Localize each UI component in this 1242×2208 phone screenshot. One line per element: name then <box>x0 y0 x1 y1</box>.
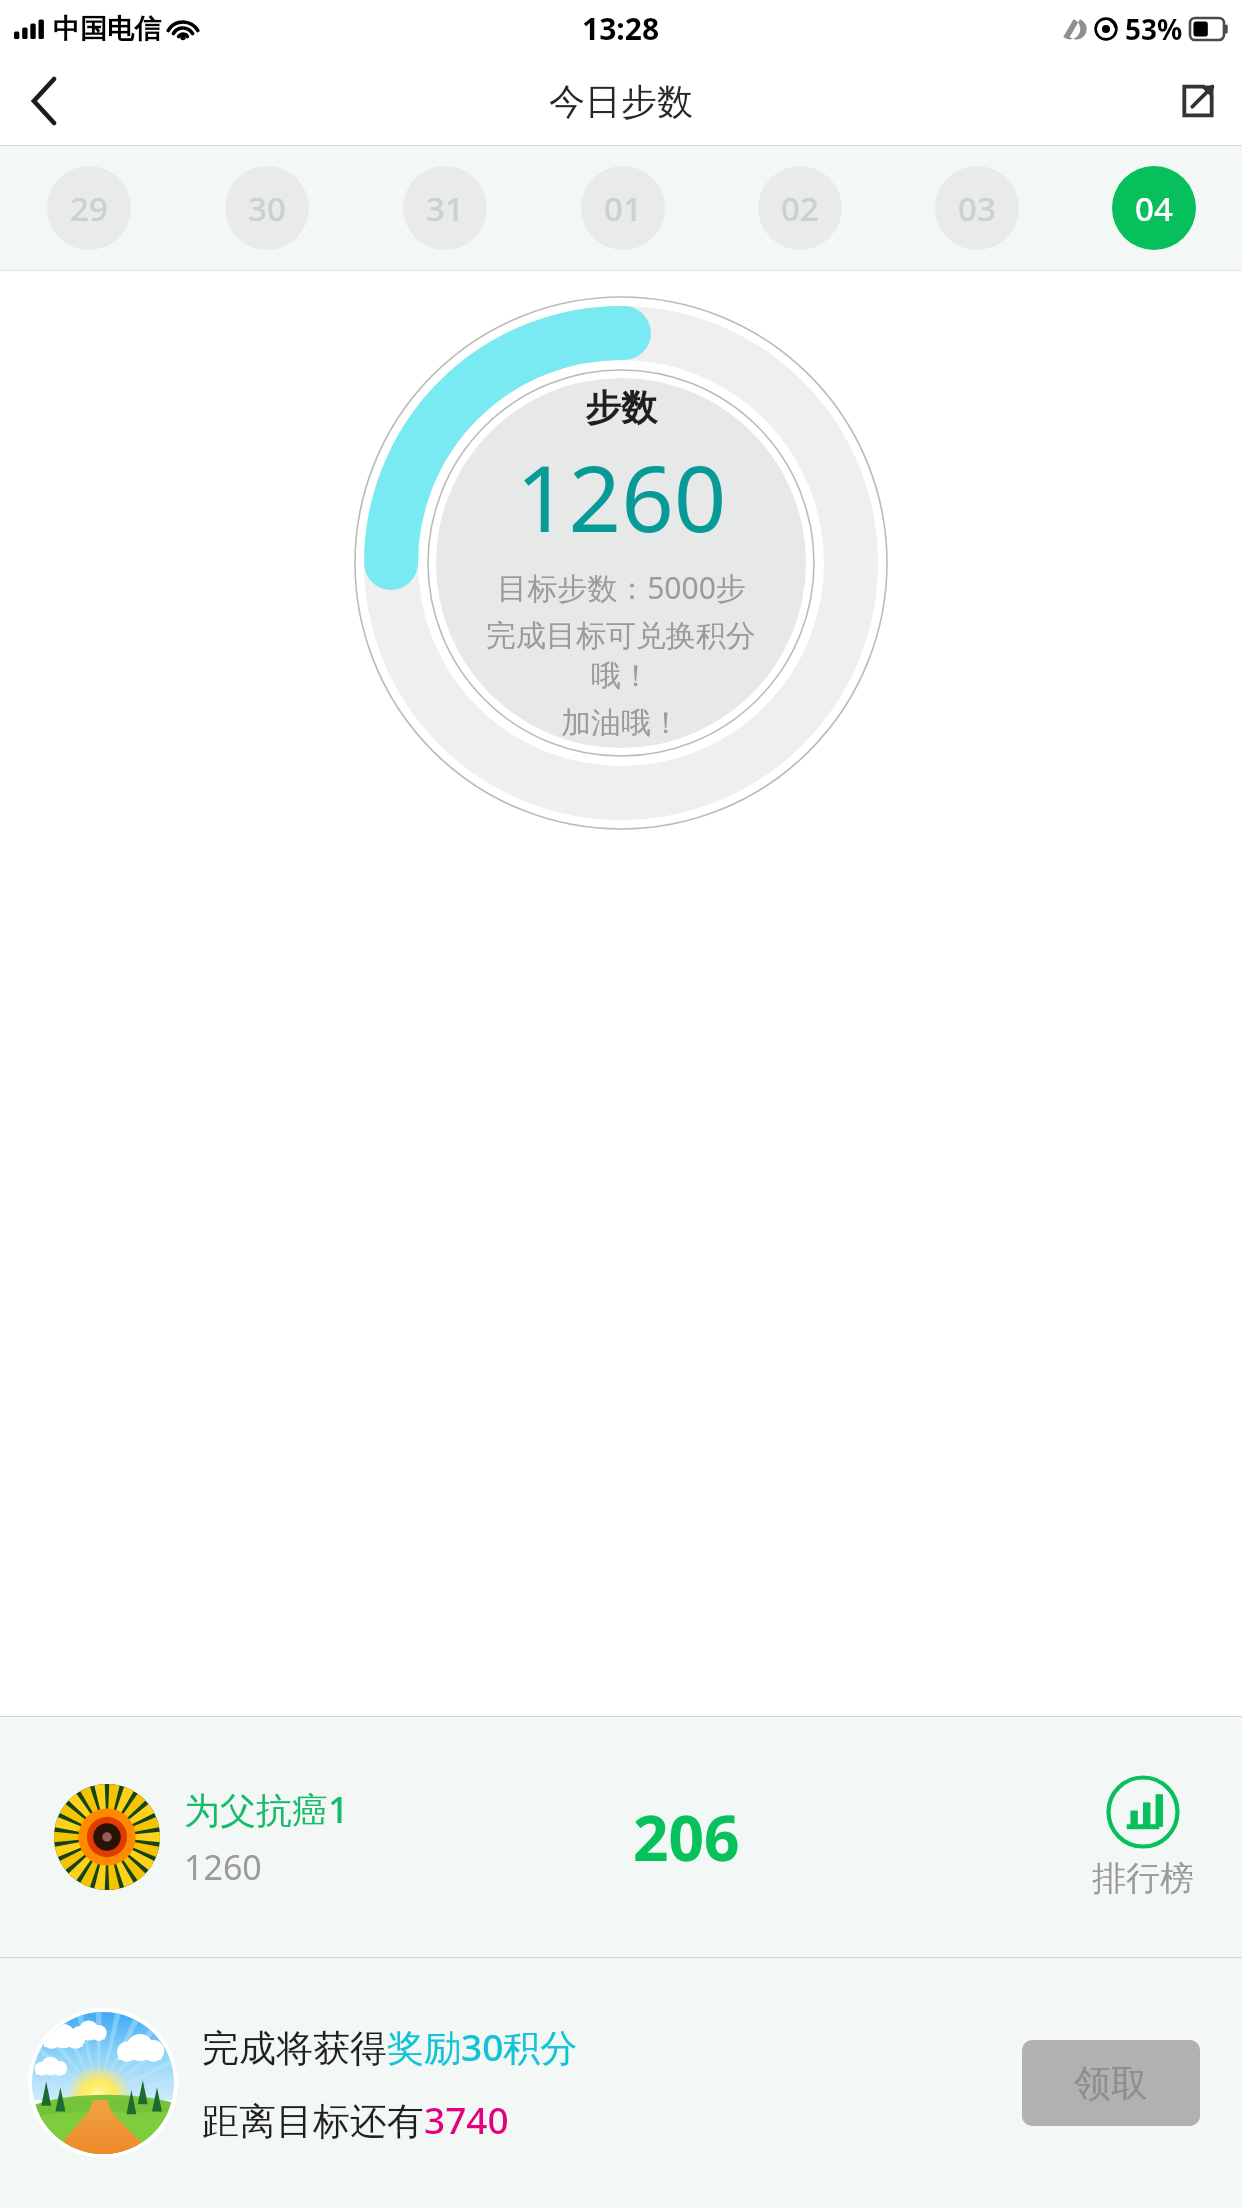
staticText: 加油哦！ <box>561 704 681 742</box>
staticText: 02 <box>781 186 819 231</box>
staticText: 排行榜 <box>1092 1857 1194 1900</box>
button[interactable]: 01 <box>534 146 711 270</box>
button[interactable]: 02 <box>711 146 888 270</box>
staticText: 206 <box>633 1795 740 1879</box>
button[interactable]: 31 <box>356 146 534 270</box>
staticText: 完成将获得奖励30积分 <box>202 2021 578 2072</box>
staticText: 30 <box>248 186 286 231</box>
button[interactable]: 为父抗癌1 <box>0 1717 1242 1957</box>
staticText: 31 <box>426 186 464 231</box>
staticText: 13:28 <box>582 8 660 49</box>
staticText: 完成目标可兑换积分哦！ <box>461 617 781 695</box>
staticText: 距离目标还有3740 <box>202 2094 509 2145</box>
staticText: 01 <box>604 186 642 231</box>
staticText: 04 <box>1135 186 1173 231</box>
button[interactable]: Back <box>0 57 88 145</box>
button[interactable]: 30 <box>178 146 356 270</box>
staticText: 今日步数 <box>549 79 693 124</box>
button[interactable]: Share <box>1154 57 1242 145</box>
staticText: 为父抗癌1 <box>184 1785 349 1834</box>
button[interactable]: 29 <box>0 146 178 270</box>
staticText: 领取 <box>1074 2060 1148 2107</box>
staticText: 03 <box>958 186 996 231</box>
staticText: 步数 <box>585 385 657 430</box>
button[interactable]: 排行榜 <box>1080 1775 1206 1900</box>
staticText: 目标步数：5000步 <box>497 567 746 608</box>
staticText: 中国电信 <box>53 12 161 46</box>
button[interactable]: 领取 <box>1022 2040 1200 2126</box>
staticText: 53% <box>1125 10 1183 48</box>
staticText: 1260 <box>516 434 727 559</box>
button[interactable]: 04 <box>1065 146 1242 270</box>
button[interactable]: 03 <box>888 146 1065 270</box>
staticText: 29 <box>70 186 108 231</box>
staticText: 1260 <box>184 1844 262 1890</box>
